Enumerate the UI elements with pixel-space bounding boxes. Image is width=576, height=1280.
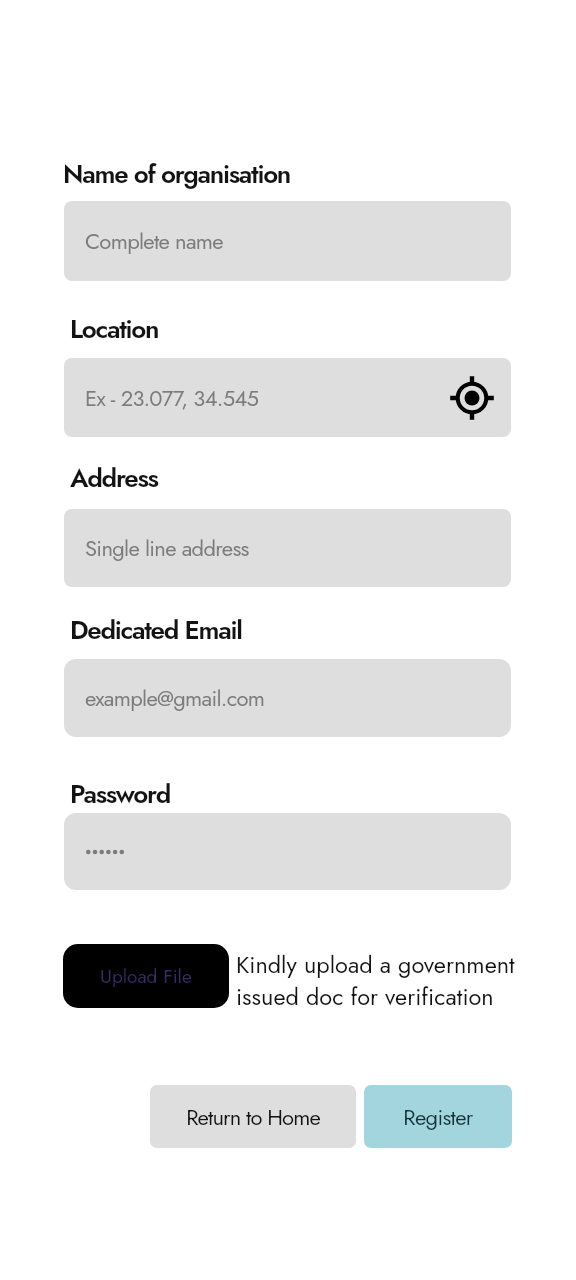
staticText: example@gmail.com bbox=[85, 682, 265, 714]
button[interactable]: Ex - 23.077, 34.545 bbox=[64, 358, 511, 437]
staticText: Password bbox=[70, 775, 171, 813]
button[interactable]: Register bbox=[364, 1085, 512, 1148]
button[interactable]: Upload File bbox=[63, 944, 229, 1008]
button[interactable] bbox=[64, 813, 511, 890]
button[interactable]: Return to Home bbox=[150, 1085, 356, 1148]
button[interactable]: Single line address bbox=[64, 509, 511, 587]
button[interactable]: Use current location bbox=[446, 372, 498, 424]
staticText: Dedicated Email bbox=[70, 611, 242, 649]
staticText: Single line address bbox=[85, 532, 249, 564]
staticText: Address bbox=[70, 459, 158, 497]
staticText: Return to Home bbox=[186, 1101, 320, 1133]
staticText: Ex - 23.077, 34.545 bbox=[85, 382, 259, 414]
button[interactable]: example@gmail.com bbox=[64, 659, 511, 737]
staticText: Register bbox=[403, 1101, 473, 1133]
staticText: Kindly upload a government issued doc fo… bbox=[236, 948, 526, 1014]
staticText: Upload File bbox=[100, 963, 192, 990]
staticText: Name of organisation bbox=[63, 155, 291, 193]
staticText: Location bbox=[70, 310, 159, 348]
staticText: Complete name bbox=[85, 225, 223, 257]
button[interactable]: Complete name bbox=[64, 201, 511, 281]
